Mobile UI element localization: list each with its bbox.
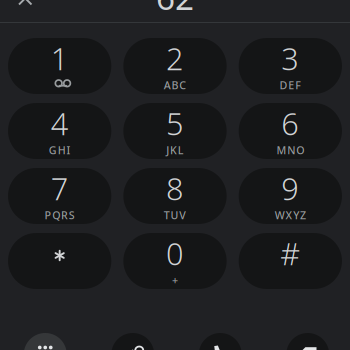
staticText: GHI — [49, 143, 70, 157]
staticText: 6 — [281, 103, 299, 144]
button[interactable]: Close — [9, 0, 41, 14]
button[interactable] — [8, 233, 111, 289]
staticText: WXYZ — [275, 208, 306, 222]
staticText: 1 — [51, 38, 69, 79]
staticText: 4 — [51, 103, 69, 144]
staticText: 8 — [166, 168, 184, 209]
button[interactable]: 8 — [123, 168, 227, 224]
button[interactable]: Backspace — [286, 333, 329, 350]
staticText: + — [172, 273, 178, 287]
staticText: ABC — [164, 78, 186, 92]
staticText: 5 — [166, 103, 184, 144]
button[interactable]: Call — [199, 333, 242, 350]
button[interactable]: More options — [24, 333, 67, 350]
button[interactable]: 3 — [239, 38, 342, 94]
button[interactable]: Video call — [111, 333, 154, 350]
staticText: DEF — [279, 78, 301, 92]
staticText: PQRS — [44, 208, 75, 222]
staticText: 2 — [166, 38, 184, 79]
staticText: # — [280, 233, 300, 274]
button[interactable]: 2 — [123, 38, 227, 94]
staticText: MNO — [276, 143, 304, 157]
staticText: 9 — [281, 168, 299, 209]
button[interactable]: 9 — [239, 168, 342, 224]
button[interactable]: 1 — [8, 38, 111, 94]
staticText: 3 — [281, 38, 299, 79]
button[interactable]: 6 — [239, 103, 342, 159]
button[interactable]: # — [239, 233, 342, 289]
button[interactable]: 4 — [8, 103, 111, 159]
button[interactable]: 5 — [123, 103, 227, 159]
staticText: TUV — [164, 208, 186, 222]
button[interactable]: 7 — [8, 168, 111, 224]
staticText: JKL — [166, 143, 184, 157]
staticText: 0 — [166, 233, 184, 274]
staticText: 7 — [51, 168, 69, 209]
staticText: 62 — [156, 0, 194, 19]
button[interactable]: 0 — [123, 233, 227, 289]
